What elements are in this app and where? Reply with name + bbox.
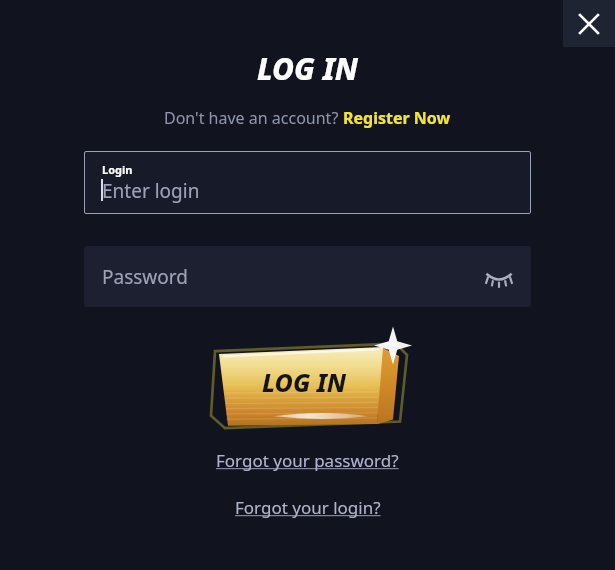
button[interactable]: Forgot your password? [212, 445, 403, 476]
staticText: LOG IN [257, 48, 358, 89]
button[interactable]: Show password [481, 259, 517, 295]
button[interactable]: Close [563, 0, 615, 47]
button[interactable]: Don't have an account? [164, 107, 451, 129]
staticText: LOG IN [262, 365, 347, 399]
staticText: Register Now [343, 107, 451, 129]
staticText: Don't have an account? [164, 107, 343, 129]
button[interactable]: Login [84, 151, 531, 214]
staticText: Login [102, 162, 133, 177]
button[interactable]: LOG IN [208, 336, 408, 431]
button[interactable]: Password [84, 246, 531, 307]
staticText: Enter login [102, 178, 200, 204]
staticText: Password [102, 264, 188, 290]
button[interactable]: Forgot your login? [231, 492, 385, 523]
